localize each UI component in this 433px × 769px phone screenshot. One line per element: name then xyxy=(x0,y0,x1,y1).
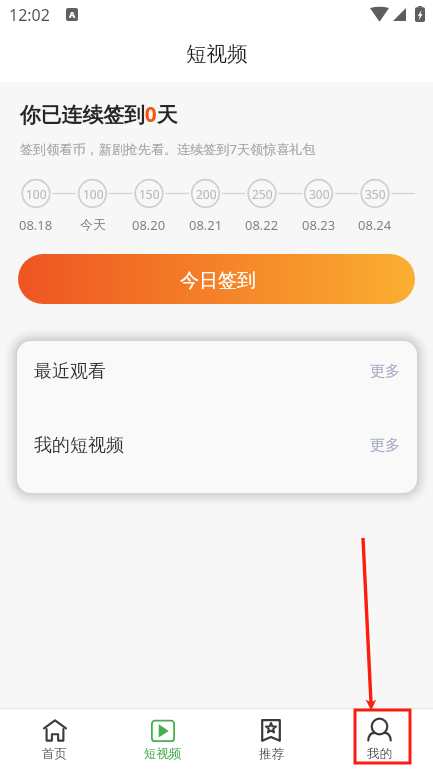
staticText: 08.18 xyxy=(19,216,53,232)
staticText: A xyxy=(69,8,76,20)
staticText: 250 xyxy=(252,186,273,202)
staticText: 签到领看币，新剧抢先看。连续签到7天领惊喜礼包 xyxy=(20,140,316,158)
button[interactable]: 今日签到 xyxy=(18,254,415,304)
staticText: 08.24 xyxy=(358,216,392,232)
staticText: 08.21 xyxy=(189,216,223,232)
staticText: 推荐 xyxy=(259,746,284,762)
button[interactable]: 我的短视频 xyxy=(17,408,417,482)
staticText: 100 xyxy=(83,186,104,202)
staticText: 08.22 xyxy=(245,216,279,232)
staticText: 首页 xyxy=(42,746,67,762)
staticText: 今天 xyxy=(80,216,106,232)
staticText: 100 xyxy=(26,186,47,202)
button[interactable]: 我的 xyxy=(325,709,433,769)
staticText: 150 xyxy=(139,186,160,202)
staticText: 300 xyxy=(309,186,330,202)
staticText: 更多 xyxy=(370,436,400,455)
staticText: 更多 xyxy=(370,362,400,381)
staticText: 短视频 xyxy=(186,41,248,67)
staticText: 350 xyxy=(365,186,386,202)
button[interactable]: 首页 xyxy=(0,709,109,769)
staticText: 08.20 xyxy=(132,216,166,232)
button[interactable]: 短视频 xyxy=(109,709,217,769)
staticText: 你已连续签到0天 xyxy=(20,100,178,128)
staticText: 200 xyxy=(196,186,217,202)
staticText: 我的短视频 xyxy=(34,434,124,457)
button[interactable]: 推荐 xyxy=(217,709,325,769)
staticText: 08.23 xyxy=(302,216,336,232)
staticText: 12:02 xyxy=(9,4,50,26)
staticText: 短视频 xyxy=(144,746,182,762)
staticText: 今日签到 xyxy=(180,269,256,293)
button[interactable]: 最近观看 xyxy=(17,341,417,401)
staticText: 我的 xyxy=(367,746,392,762)
staticText: 最近观看 xyxy=(34,360,106,383)
